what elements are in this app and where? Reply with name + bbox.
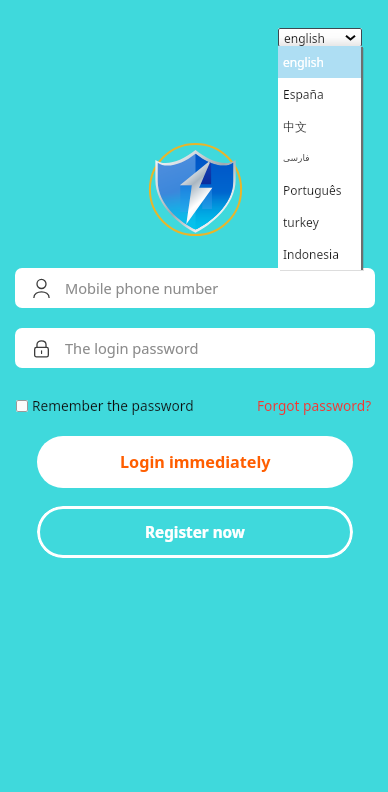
button[interactable]: Indonesia (278, 238, 361, 270)
staticText: Register now (145, 522, 245, 543)
staticText: Português (283, 182, 342, 198)
staticText: فارسی (283, 153, 310, 163)
staticText: The login password (65, 338, 199, 358)
staticText: Remember the password (32, 396, 194, 415)
staticText: turkey (283, 214, 319, 230)
staticText: english (283, 54, 324, 70)
button[interactable]: english (278, 46, 361, 78)
button[interactable]: Forgot password? (257, 396, 372, 415)
button[interactable]: فارسی (278, 142, 361, 174)
button[interactable]: english (278, 28, 362, 47)
staticText: España (283, 86, 324, 102)
button[interactable]: Português (278, 174, 361, 206)
button[interactable]: Register now (37, 506, 353, 558)
staticText: Login immediately (120, 451, 271, 473)
staticText: english (284, 30, 325, 46)
button[interactable]: 中文 (278, 110, 361, 142)
staticText: Mobile phone number (65, 278, 219, 298)
button[interactable]: The login password (15, 328, 375, 368)
button[interactable]: España (278, 78, 361, 110)
staticText: 中文 (283, 119, 307, 134)
staticText: Indonesia (283, 246, 339, 262)
button[interactable]: Remember the password (15, 396, 194, 415)
button[interactable]: Mobile phone number (15, 268, 375, 308)
button[interactable]: Login immediately (37, 436, 353, 488)
button[interactable]: turkey (278, 206, 361, 238)
